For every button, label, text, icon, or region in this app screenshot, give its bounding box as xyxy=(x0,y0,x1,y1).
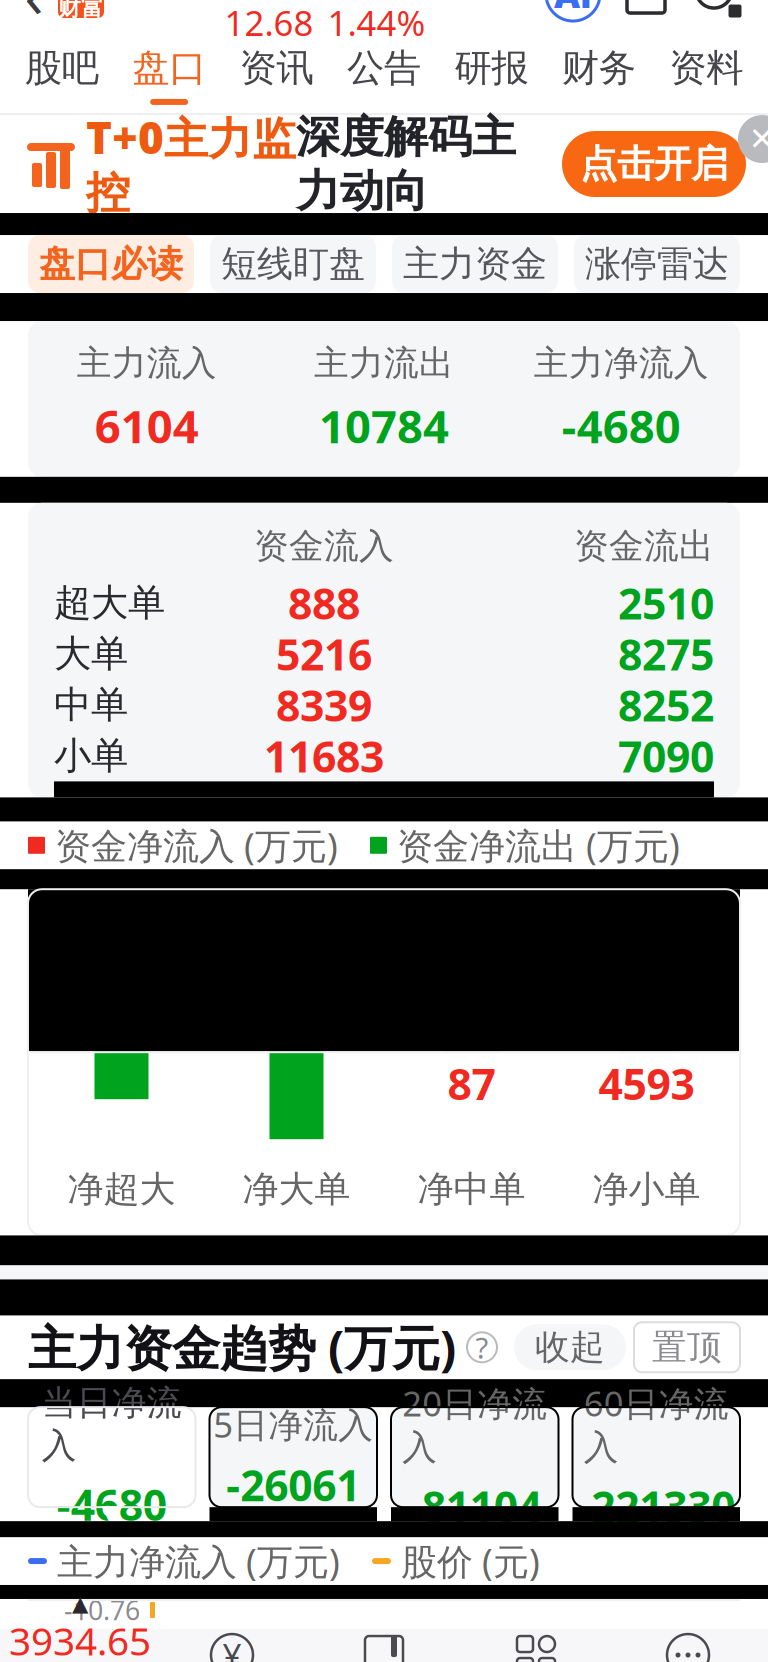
button[interactable]: Help xyxy=(467,1332,497,1362)
staticText: 中单 xyxy=(54,682,128,728)
button[interactable]: 公告 xyxy=(330,37,438,113)
staticText: 小单 xyxy=(54,733,128,779)
staticText: 当日净流入 xyxy=(42,1382,182,1467)
button[interactable]: Search xyxy=(692,0,744,20)
staticText: 资金净流入 (万元) xyxy=(55,821,338,869)
staticText: 888 xyxy=(288,575,360,631)
button[interactable]: 点击开启 xyxy=(562,131,746,197)
button[interactable]: AI assistant xyxy=(546,0,600,21)
staticText: -26061 xyxy=(226,1456,360,1513)
button[interactable]: 股吧 xyxy=(8,37,115,113)
button[interactable]: 功能 xyxy=(460,1632,612,1662)
staticText: -221330 xyxy=(577,1478,735,1534)
staticText: -10.76 xyxy=(64,1592,140,1628)
staticText: 研报 xyxy=(454,45,528,91)
staticText: 8252 xyxy=(618,677,714,733)
staticText: 主力资金 xyxy=(403,242,547,286)
staticText: ¥ xyxy=(222,1633,241,1662)
staticText: ✕ xyxy=(748,121,768,157)
button[interactable]: 短线盯盘 xyxy=(210,235,376,293)
staticText: 12.68 xyxy=(224,0,313,45)
staticText: 点击开启 xyxy=(580,141,728,187)
staticText: 87 xyxy=(447,1055,495,1112)
staticText: -81104 xyxy=(408,1478,542,1534)
staticText: 深度解码主力动向 xyxy=(296,110,516,218)
staticText: 资金流入 xyxy=(254,525,394,567)
staticText: 3934.65 xyxy=(9,1615,151,1662)
button[interactable]: 财务 xyxy=(545,37,652,113)
button[interactable]: 设自选 xyxy=(612,1632,764,1662)
button[interactable]: 置顶 xyxy=(634,1322,740,1372)
staticText: 盘口必读 xyxy=(39,242,183,286)
staticText: ▼ xyxy=(101,1499,122,1529)
staticText: 5日净流入 xyxy=(213,1401,373,1447)
staticText: 主力流入 xyxy=(77,342,217,385)
button[interactable]: 资讯 xyxy=(223,37,330,113)
staticText: 10784 xyxy=(319,396,449,456)
staticText: 11683 xyxy=(264,728,384,784)
staticText: 主力资金趋势 (万元) xyxy=(28,1315,456,1379)
staticText: 主力流出 xyxy=(314,342,454,385)
staticText: 5216 xyxy=(276,626,372,682)
button[interactable]: 盘口必读 xyxy=(28,235,194,293)
staticText: T+0主力监控 xyxy=(86,108,296,220)
staticText: 8339 xyxy=(276,677,372,733)
staticText: 财富 xyxy=(58,0,104,22)
staticText: 净超大 xyxy=(67,1167,175,1211)
button[interactable]: Back xyxy=(0,0,104,19)
staticText: 短线盯盘 xyxy=(221,242,365,286)
staticText: 置顶 xyxy=(652,1326,722,1369)
staticText: 60日净流入 xyxy=(584,1380,729,1469)
staticText: 股价 (元) xyxy=(401,1537,540,1585)
staticText: 主力净流入 xyxy=(534,342,709,385)
button[interactable]: 主力资金 xyxy=(392,235,558,293)
button[interactable]: Share xyxy=(620,0,672,20)
staticText: 20日净流入 xyxy=(402,1380,547,1469)
button[interactable]: ▲ xyxy=(4,1596,156,1662)
staticText: 收起 xyxy=(535,1326,605,1369)
staticText: 超大单 xyxy=(54,580,165,626)
staticText: 2510 xyxy=(618,575,714,631)
staticText: 1.44% xyxy=(327,0,425,45)
button[interactable]: 研报 xyxy=(438,37,545,113)
staticText: 股吧 xyxy=(25,45,99,91)
button[interactable]: 发帖 xyxy=(308,1632,460,1662)
button[interactable]: 收起 xyxy=(514,1324,626,1370)
button[interactable]: 当日净流入 xyxy=(28,1407,195,1521)
staticText: 资讯 xyxy=(240,45,314,91)
staticText: 资料 xyxy=(669,45,743,91)
staticText: 大单 xyxy=(54,631,128,677)
button[interactable]: ¥ xyxy=(156,1632,308,1662)
staticText: 资金净流出 (万元) xyxy=(397,821,680,869)
button[interactable]: 5日净流入 xyxy=(209,1407,377,1521)
staticText: 净大单 xyxy=(242,1167,350,1211)
staticText: 净中单 xyxy=(417,1167,525,1211)
staticText: 8275 xyxy=(618,626,714,682)
staticText: 4593 xyxy=(598,1055,694,1112)
staticText: 资金流出 xyxy=(574,525,714,567)
staticText: ‹ xyxy=(24,0,43,35)
staticText: 涨停雷达 xyxy=(585,242,729,286)
staticText: 6104 xyxy=(95,396,199,456)
staticText: 公告 xyxy=(347,45,421,91)
staticText: -4680 xyxy=(57,1476,167,1533)
staticText: ▲ xyxy=(72,1592,88,1616)
button[interactable]: 60日净流入 xyxy=(572,1407,740,1521)
button[interactable]: Close banner xyxy=(738,115,768,163)
staticText: 盘口 xyxy=(132,45,206,91)
staticText: 财务 xyxy=(562,45,636,91)
button[interactable]: 盘口 xyxy=(115,37,223,113)
button[interactable]: 资料 xyxy=(653,37,760,113)
staticText: Ai xyxy=(554,0,592,18)
staticText: 净小单 xyxy=(592,1167,700,1211)
staticText: -4680 xyxy=(562,396,681,456)
staticText: 7090 xyxy=(618,728,714,784)
staticText: 主力净流入 (万元) xyxy=(57,1537,340,1585)
button[interactable]: 涨停雷达 xyxy=(574,235,740,293)
staticText: ? xyxy=(475,1328,488,1367)
button[interactable]: 20日净流入 xyxy=(391,1407,558,1521)
